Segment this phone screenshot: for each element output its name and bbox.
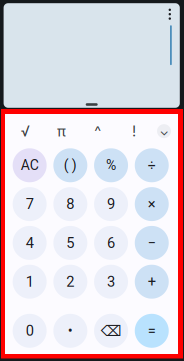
button[interactable]: ⌫: [94, 314, 128, 348]
button[interactable]: More options: [160, 3, 180, 25]
button[interactable]: 8: [53, 187, 87, 221]
button[interactable]: =: [135, 314, 169, 348]
button[interactable]: AC: [13, 148, 47, 182]
staticText: ÷: [148, 157, 156, 173]
staticText: 1: [26, 273, 34, 290]
button[interactable]: 4: [13, 226, 47, 260]
staticText: AC: [21, 157, 39, 173]
staticText: ( ): [64, 157, 77, 173]
button[interactable]: 0: [13, 314, 47, 348]
button[interactable]: 1: [13, 265, 47, 299]
button[interactable]: ×: [135, 187, 169, 221]
button[interactable]: +: [135, 265, 169, 299]
button[interactable]: •: [53, 314, 87, 348]
button[interactable]: 2: [53, 265, 87, 299]
button[interactable]: 6: [94, 226, 128, 260]
button[interactable]: %: [94, 148, 128, 182]
staticText: ⌄: [159, 124, 168, 138]
button[interactable]: 5: [53, 226, 87, 260]
staticText: 7: [26, 195, 34, 213]
button[interactable]: −: [135, 226, 169, 260]
staticText: ^: [94, 122, 101, 140]
staticText: 6: [107, 234, 115, 251]
staticText: 5: [66, 234, 74, 251]
staticText: √: [21, 122, 30, 140]
staticText: 3: [107, 273, 115, 290]
staticText: %: [106, 157, 116, 173]
button[interactable]: !: [116, 119, 152, 143]
staticText: =: [148, 322, 156, 339]
button[interactable]: √: [7, 119, 43, 143]
staticText: ×: [148, 195, 156, 213]
staticText: 8: [66, 195, 74, 213]
staticText: 2: [66, 273, 74, 290]
staticText: 0: [26, 322, 34, 339]
button[interactable]: ( ): [53, 148, 87, 182]
staticText: ⌫: [100, 322, 121, 339]
button[interactable]: π: [43, 119, 79, 143]
staticText: 9: [107, 195, 115, 213]
button[interactable]: ^: [79, 119, 116, 143]
button[interactable]: 7: [13, 187, 47, 221]
button[interactable]: 9: [94, 187, 128, 221]
staticText: •: [68, 322, 73, 339]
staticText: !: [132, 122, 136, 140]
staticText: +: [148, 273, 156, 290]
button[interactable]: ÷: [135, 148, 169, 182]
staticText: 4: [26, 234, 34, 251]
button[interactable]: 3: [94, 265, 128, 299]
staticText: π: [57, 122, 66, 140]
button[interactable]: More functions: [152, 119, 176, 143]
staticText: −: [148, 234, 156, 251]
